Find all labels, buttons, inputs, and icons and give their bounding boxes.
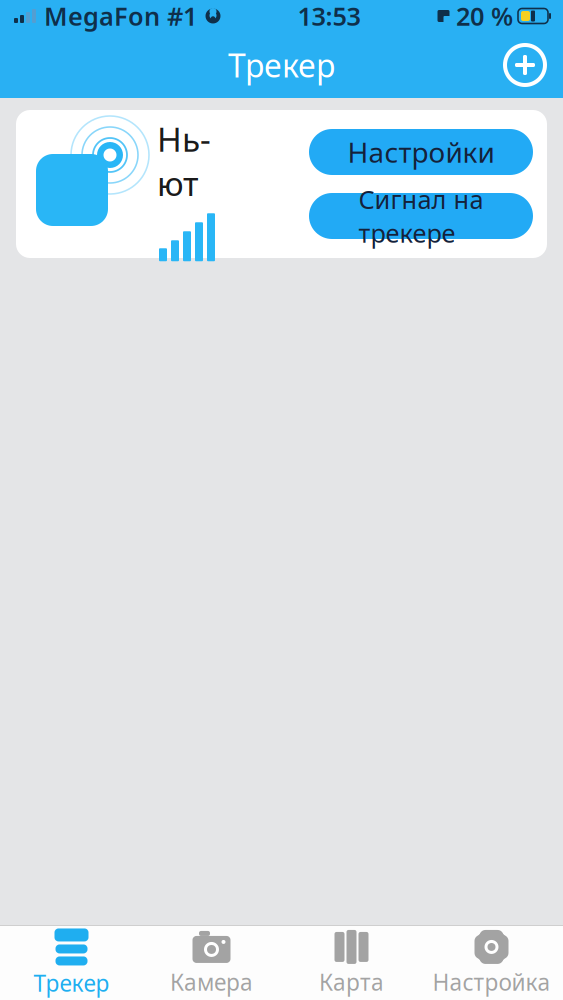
button[interactable]: Добавить трекер	[497, 37, 553, 93]
staticText: Настройка	[432, 967, 550, 997]
staticText: Сигнал на трекере	[358, 182, 483, 250]
staticText: Карта	[319, 967, 384, 997]
staticText: Настройки	[347, 133, 494, 171]
staticText: Трекер	[228, 44, 335, 86]
staticText: Камера	[170, 967, 253, 997]
staticText: 13:53	[297, 0, 360, 33]
staticText: 20 %	[456, 0, 513, 33]
button[interactable]: Карта	[281, 929, 421, 997]
button[interactable]: Сигнал на трекере	[309, 193, 533, 239]
button[interactable]: Трекер	[1, 929, 141, 997]
button[interactable]: Настройки	[309, 129, 533, 175]
staticText: Трекер	[33, 968, 109, 998]
staticText: MegaFon #1	[44, 0, 197, 33]
button[interactable]: Настройка	[421, 929, 561, 997]
button[interactable]: Камера	[141, 929, 281, 997]
staticText: Ньют	[157, 117, 211, 205]
